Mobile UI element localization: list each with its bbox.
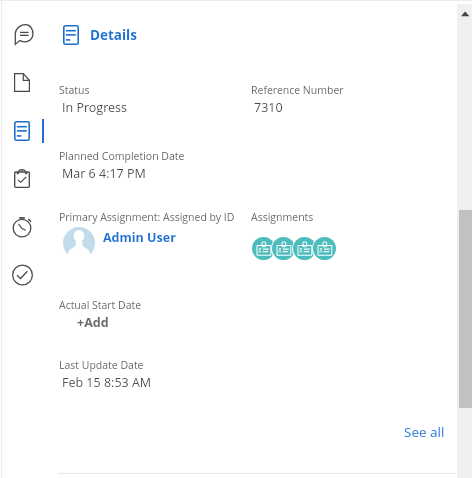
staticText: In Progress bbox=[62, 99, 127, 116]
button[interactable]: Details bbox=[0, 110, 46, 152]
button[interactable]: Assignment 4 bbox=[312, 236, 338, 262]
staticText: Planned Completion Date bbox=[59, 149, 185, 163]
staticText: Reference Number bbox=[251, 83, 344, 97]
staticText: Last Update Date bbox=[59, 358, 144, 372]
staticText: Assignments bbox=[251, 210, 314, 224]
staticText: Status bbox=[59, 83, 90, 97]
button[interactable]: Details bbox=[63, 25, 137, 45]
button[interactable]: Messages bbox=[0, 13, 46, 55]
button[interactable]: Admin User bbox=[63, 227, 176, 259]
staticText: +Add bbox=[77, 314, 109, 331]
staticText: Primary Assignment: Assigned by ID bbox=[59, 210, 235, 224]
button[interactable]: See all bbox=[404, 423, 445, 441]
button[interactable]: Assignment 3 bbox=[292, 236, 318, 262]
button[interactable]: Tasks bbox=[0, 157, 46, 199]
button[interactable]: Documents bbox=[0, 62, 46, 104]
button[interactable]: Completed bbox=[0, 253, 46, 295]
staticText: Mar 6 4:17 PM bbox=[62, 165, 146, 182]
staticText: 7310 bbox=[254, 99, 283, 116]
staticText: Feb 15 8:53 AM bbox=[62, 374, 152, 391]
button[interactable]: +Add bbox=[77, 314, 109, 331]
button[interactable]: Assignment 2 bbox=[271, 236, 297, 262]
staticText: Admin User bbox=[103, 229, 176, 246]
button[interactable]: Time bbox=[0, 206, 46, 248]
button[interactable]: Assignment 1 bbox=[251, 236, 277, 262]
staticText: Details bbox=[90, 26, 137, 44]
staticText: See all bbox=[404, 423, 445, 441]
staticText: Actual Start Date bbox=[59, 298, 142, 312]
